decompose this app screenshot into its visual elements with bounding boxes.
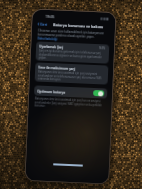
staticText: Uyarlamalı Şarj — [39, 44, 99, 50]
button[interactable]: Optimum batarya — [34, 85, 107, 99]
button[interactable]: Uyarlamalı Şarj — [35, 41, 109, 64]
staticText: Bataryanın ömrünü uzatmak için şarj hızı… — [34, 96, 106, 110]
staticText: %75 — [99, 46, 106, 50]
staticText: 19:35 — [45, 14, 55, 19]
staticText: Cihazınızı uzun süre kullanabilmek için … — [38, 28, 110, 40]
button[interactable]: Daha fazla bilgi — [37, 36, 58, 41]
button[interactable]: Geri — [36, 20, 49, 28]
staticText: Geri — [40, 22, 48, 27]
button[interactable]: Sınır ile maksimum şarj — [35, 62, 108, 85]
staticText: Sınır ile maksimum şarj — [38, 65, 105, 71]
staticText: Batarya koruması ve bakımı — [53, 22, 104, 29]
staticText: Şarjı en iyi duruma getirmek için telefo… — [39, 49, 106, 61]
staticText: Bataryanın ömrünü uzatmak için şarj sevi… — [38, 70, 105, 82]
staticText: Optimum batarya — [37, 88, 93, 95]
